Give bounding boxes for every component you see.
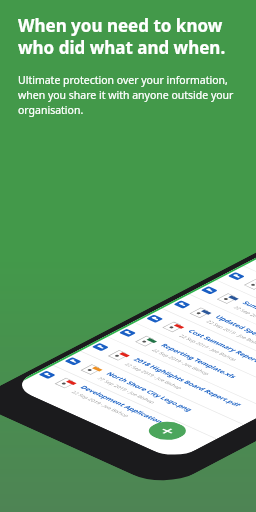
staticText: Summary Sheet.docx — [240, 300, 256, 334]
button[interactable]: Summary Sheet.docx — [214, 265, 256, 354]
button[interactable]: Summary Sheet.docx — [187, 279, 256, 368]
staticText: Ultimate protection over your informatio… — [18, 73, 244, 117]
staticText: 22 Sep 2019 - Joe Bishop — [232, 305, 256, 333]
button[interactable]: 2018 Highlights Board Report.pdf — [78, 336, 256, 425]
button[interactable]: North Shore City Logo.png — [51, 350, 243, 439]
staticText: 22 Sep 2019 - Joe Bishop — [96, 376, 157, 404]
staticText: When you need to know who did what and w… — [18, 14, 244, 59]
staticText: 22 Sep 2019 - Joe Bishop — [205, 319, 256, 348]
staticText: Reporting Template.xls — [158, 342, 240, 380]
button[interactable]: Cost Summary Report.pdf — [132, 308, 256, 396]
button[interactable]: Development Application.pdf — [241, 251, 256, 339]
staticText: Development Application.pdf — [78, 384, 178, 430]
staticText: 22 Sep 2019 - Joe Bishop — [123, 362, 185, 390]
button[interactable]: Updated Specification.docx — [160, 293, 256, 382]
staticText: North Shore City Logo.png — [104, 371, 195, 413]
staticText: Updated Specification.docx — [213, 314, 256, 357]
button[interactable]: Add — [141, 418, 193, 444]
staticText: 22 Sep 2019 - Joe Bishop — [150, 348, 212, 376]
button[interactable]: Reporting Template.xls — [105, 322, 256, 411]
staticText: 22 Sep 2019 - Joe Bishop — [70, 390, 131, 418]
staticText: 22 Sep 2019 - Joe Bishop — [177, 334, 239, 362]
staticText: Cost Summary Report.pdf — [185, 328, 256, 369]
staticText: 2018 Highlights Board Report.pdf — [131, 357, 243, 408]
button[interactable]: Development Application.pdf — [26, 364, 216, 452]
